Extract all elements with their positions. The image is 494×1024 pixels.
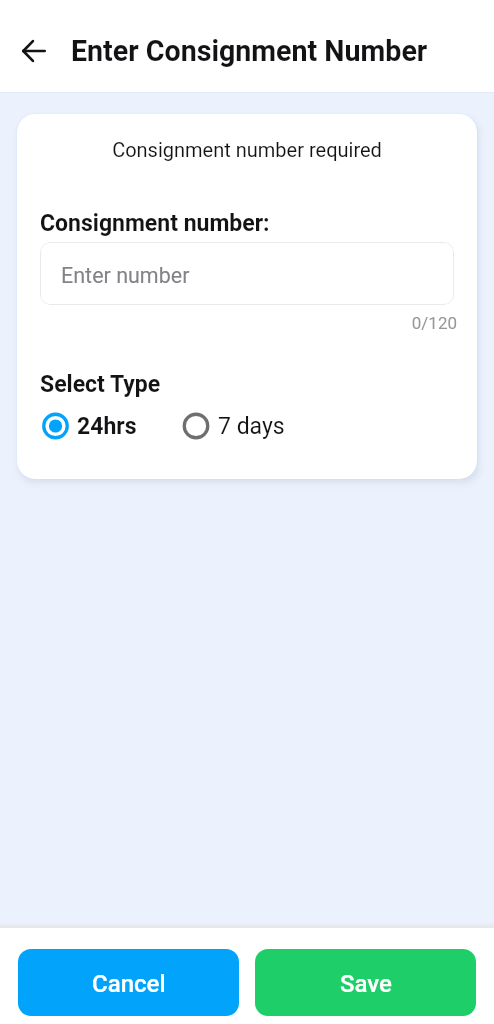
button[interactable]: Back — [13, 30, 54, 71]
staticText: Consignment number required — [40, 138, 454, 161]
staticText: Cancel — [92, 970, 166, 998]
staticText: Enter number — [61, 263, 190, 288]
staticText: 7 days — [218, 413, 285, 440]
button[interactable]: 7 days — [181, 411, 285, 441]
button[interactable]: Enter number — [40, 242, 454, 305]
staticText: 0/120 — [43, 313, 457, 333]
staticText: Save — [340, 970, 392, 998]
button[interactable]: Cancel — [18, 949, 239, 1016]
staticText: Consignment number: — [40, 210, 270, 237]
button[interactable]: 24hrs — [40, 411, 137, 441]
staticText: Select Type — [40, 371, 161, 398]
staticText: 24hrs — [77, 413, 137, 440]
button[interactable]: Save — [255, 949, 476, 1016]
staticText: Enter Consignment Number — [71, 34, 428, 68]
